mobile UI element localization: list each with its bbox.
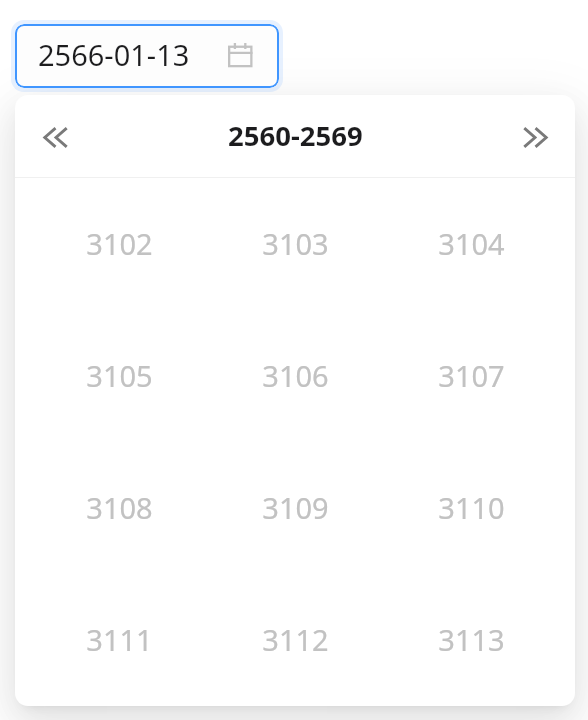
- staticText: 3109: [262, 488, 329, 527]
- staticText: 3103: [262, 224, 329, 263]
- button[interactable]: 3107: [383, 310, 559, 442]
- button[interactable]: Previous decade: [15, 95, 97, 177]
- staticText: 2566-01-13: [38, 35, 229, 74]
- staticText: 3104: [438, 224, 505, 263]
- staticText: 3102: [86, 224, 153, 263]
- button[interactable]: Next decade: [493, 95, 575, 177]
- staticText: 3107: [438, 356, 505, 395]
- button[interactable]: 3104: [383, 178, 559, 310]
- staticText: 3106: [262, 356, 329, 395]
- button[interactable]: 3108: [31, 442, 207, 574]
- staticText: 3108: [86, 488, 153, 527]
- staticText: 3112: [262, 620, 329, 659]
- staticText: 2560-2569: [228, 117, 363, 154]
- button[interactable]: 3102: [31, 178, 207, 310]
- staticText: 3105: [86, 356, 153, 395]
- staticText: 3113: [438, 620, 505, 659]
- button[interactable]: 3111: [31, 574, 207, 706]
- staticText: 3111: [86, 620, 153, 659]
- button[interactable]: Open date picker: [226, 41, 256, 71]
- button[interactable]: 3110: [383, 442, 559, 574]
- button[interactable]: 2566-01-13: [11, 20, 283, 92]
- button[interactable]: 3106: [207, 310, 383, 442]
- button[interactable]: 3113: [383, 574, 559, 706]
- button[interactable]: 3112: [207, 574, 383, 706]
- button[interactable]: 3105: [31, 310, 207, 442]
- staticText: 3110: [438, 488, 505, 527]
- button[interactable]: 3103: [207, 178, 383, 310]
- button[interactable]: 3109: [207, 442, 383, 574]
